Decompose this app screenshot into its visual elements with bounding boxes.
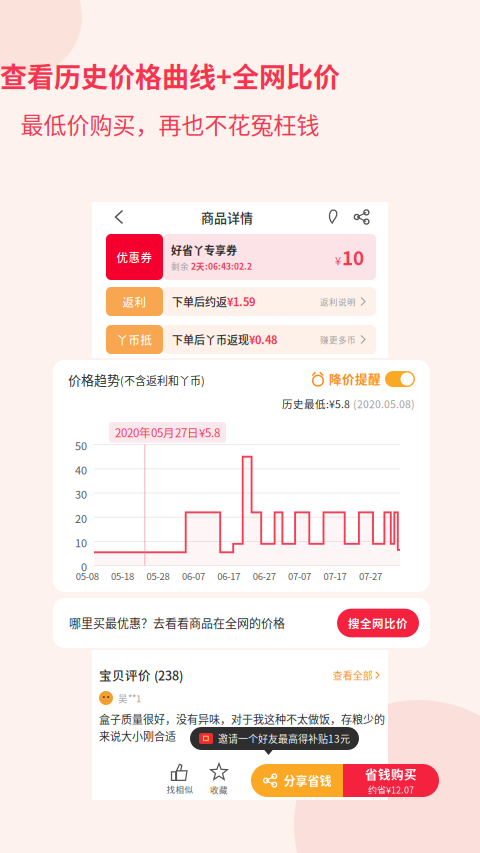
staticText: ¥1.59 [227, 293, 255, 309]
staticText: 06-07 [182, 569, 205, 583]
staticText: 盒子质量很好，没有异味，对于我这种不太做饭，存粮少的 [99, 711, 385, 727]
staticText: 价格趋势 [68, 370, 120, 389]
staticText: 0 [81, 559, 87, 574]
staticText: 剩余 [171, 260, 191, 272]
button[interactable]: 优惠券 [92, 234, 388, 280]
staticText: 找相似 [166, 783, 193, 795]
button[interactable]: 查看全部 [333, 668, 380, 682]
staticText: 省钱购买 [365, 765, 417, 783]
staticText: 返利 [122, 293, 146, 310]
staticText: 吴**1 [118, 691, 141, 705]
staticText: 07-17 [323, 569, 346, 583]
staticText: 优惠券 [116, 249, 152, 265]
staticText: 06-17 [217, 569, 240, 583]
staticText: 哪里买最优惠？去看看商品在全网的价格 [69, 614, 285, 632]
staticText: 2020年05月27日¥5.8 [115, 424, 220, 441]
button[interactable]: 返回 [104, 203, 134, 231]
button[interactable]: 省钱购买 [343, 764, 439, 797]
staticText: 05-18 [111, 569, 134, 583]
staticText: 好省丫专享券 [171, 242, 237, 258]
staticText: 10 [75, 534, 87, 550]
staticText: 05-08 [76, 569, 99, 583]
staticText: 下单后约返 [172, 293, 227, 309]
staticText: (不含返利和丫币) [120, 372, 205, 388]
button[interactable]: 哪里买最优惠？去看看商品在全网的价格 [53, 598, 430, 648]
staticText: 约省¥12.07 [368, 783, 414, 796]
staticText: 20 [75, 510, 87, 526]
staticText: (2020.05.08) [353, 396, 415, 411]
staticText: 来说大小刚合适 [99, 728, 176, 744]
button[interactable]: 分享 [348, 203, 376, 231]
staticText: 查看全部 [333, 668, 373, 682]
staticText: 降价提醒 [329, 370, 381, 388]
button[interactable]: 足迹 [320, 203, 348, 231]
staticText: 2天:06:43:02.2 [191, 260, 252, 272]
staticText: ¥ [335, 252, 341, 268]
staticText: 宝贝评价 (238) [99, 666, 183, 684]
staticText: 丫币抵 [116, 331, 152, 348]
staticText: 邀请一个好友最高得补贴13元 [218, 731, 350, 746]
staticText: 查看历史价格曲线+全网比价 [0, 56, 340, 95]
button[interactable]: 降价提醒 [311, 370, 415, 388]
staticText: 搜全网比价 [348, 615, 408, 631]
staticText: 07-27 [359, 569, 382, 583]
staticText: 07-07 [288, 569, 311, 583]
staticText: 收藏 [210, 783, 228, 796]
staticText: ¥0.48 [249, 331, 277, 347]
button[interactable]: 收藏 [196, 759, 242, 799]
staticText: 返利说明 [320, 295, 356, 308]
staticText: 10 [342, 243, 364, 271]
staticText: 30 [75, 486, 87, 502]
staticText: 商品详情 [201, 208, 253, 226]
staticText: 赚更多币 [320, 333, 356, 346]
staticText: 50 [75, 438, 87, 453]
button[interactable]: 返利 [92, 287, 388, 316]
staticText: 40 [75, 462, 87, 478]
button[interactable]: 丫币抵 [92, 325, 388, 354]
button[interactable]: 找相似 [157, 759, 203, 799]
staticText: 下单后丫币返现 [172, 331, 249, 347]
staticText: 最低价购买，再也不花冤枉钱 [20, 107, 319, 140]
staticText: 分享省钱 [283, 772, 331, 789]
staticText: 05-28 [146, 569, 169, 583]
staticText: 历史最低:¥5.8 [282, 396, 350, 411]
staticText: 06-27 [253, 569, 276, 583]
button[interactable]: 分享省钱 [251, 764, 343, 797]
